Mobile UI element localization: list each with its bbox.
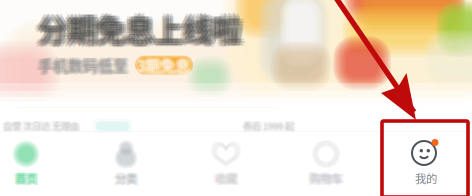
staticText: 分类 <box>117 171 139 188</box>
staticText: 券后 1999 起 <box>243 118 294 131</box>
staticText: 券后 1999 起 <box>242 119 293 132</box>
staticText: 购物车 <box>309 170 342 186</box>
staticText: 券后 1999 起 <box>242 120 293 133</box>
staticText: 3期免息 <box>137 56 190 77</box>
staticText: 分类 <box>116 169 138 186</box>
staticText: 收藏 <box>217 169 239 185</box>
staticText: 购物车 <box>309 169 342 185</box>
staticText: 自营 次日达 无理由 <box>3 120 79 134</box>
staticText: 手机数码低至 <box>41 54 131 76</box>
staticText: 3期免息 <box>137 54 190 76</box>
staticText: 分期免息上线啦 <box>40 5 243 48</box>
staticText: 自营 次日达 无理由 <box>4 118 80 132</box>
staticText: 购物车 <box>309 169 342 186</box>
staticText: 券后 1999 起 <box>241 118 292 131</box>
staticText: 券后 1999 起 <box>244 119 295 132</box>
staticText: 自营 次日达 无理由 <box>2 120 78 133</box>
staticText: 购物车 <box>311 170 344 186</box>
staticText: 3期免息 <box>138 54 191 75</box>
staticText: 自营 次日达 无理由 <box>4 120 80 134</box>
staticText: 手机数码低至 <box>36 56 126 77</box>
staticText: 手机数码低至 <box>38 53 128 74</box>
staticText: 首页 <box>15 171 37 187</box>
staticText: 收藏 <box>216 170 238 186</box>
button[interactable]: 分类 <box>76 128 176 196</box>
staticText: 购物车 <box>309 168 342 185</box>
staticText: 收藏 <box>217 170 239 186</box>
staticText: 分期免息上线啦 <box>40 8 243 51</box>
staticText: 分期免息上线啦 <box>43 7 246 49</box>
staticText: 分类 <box>116 171 138 187</box>
staticText: 分类 <box>114 170 136 186</box>
staticText: 购物车 <box>309 171 342 187</box>
staticText: 分期免息上线啦 <box>38 4 241 46</box>
staticText: 分期免息上线啦 <box>34 4 237 47</box>
staticText: 首页 <box>13 170 35 186</box>
staticText: 3期免息 <box>135 53 188 74</box>
staticText: 分期免息上线啦 <box>41 7 244 49</box>
staticText: 手机数码低至 <box>40 56 130 77</box>
staticText: 分期免息上线啦 <box>36 8 239 51</box>
staticText: 券后 1999 起 <box>245 119 296 132</box>
staticText: 券后 1999 起 <box>242 118 293 132</box>
staticText: 手机数码低至 <box>38 56 128 77</box>
staticText: 自营 次日达 无理由 <box>2 118 78 132</box>
staticText: 自营 次日达 无理由 <box>3 120 79 133</box>
staticText: 收藏 <box>214 171 236 187</box>
staticText: 券后 1999 起 <box>244 120 295 134</box>
staticText: 分期免息上线啦 <box>38 10 241 53</box>
staticText: 分类 <box>115 171 137 188</box>
staticText: 首页 <box>13 171 35 188</box>
staticText: 首页 <box>17 169 39 185</box>
staticText: 购物车 <box>307 170 340 186</box>
staticText: 3期免息 <box>137 53 190 75</box>
staticText: 购物车 <box>309 171 342 187</box>
staticText: 首页 <box>17 170 39 186</box>
button[interactable]: 我的 <box>376 128 472 196</box>
button[interactable]: 收藏 <box>176 128 276 196</box>
staticText: 收藏 <box>217 171 239 188</box>
staticText: 首页 <box>14 170 36 186</box>
staticText: 收藏 <box>215 171 237 188</box>
staticText: 分期免息上线啦 <box>38 5 241 47</box>
staticText: 分期免息上线啦 <box>42 9 245 52</box>
staticText: 分期免息上线啦 <box>36 5 239 48</box>
staticText: 首页 <box>17 171 39 188</box>
staticText: 购物车 <box>308 171 341 188</box>
staticText: 购物车 <box>310 171 343 187</box>
staticText: 自营 次日达 无理由 <box>5 119 81 132</box>
staticText: 3期免息 <box>135 54 188 76</box>
staticText: 3期免息 <box>140 54 193 76</box>
staticText: 首页 <box>16 170 38 186</box>
staticText: 分类 <box>114 171 136 187</box>
button[interactable]: 购物车 <box>276 128 376 196</box>
staticText: 3期免息 <box>138 55 191 76</box>
staticText: 收藏 <box>215 170 237 186</box>
staticText: 首页 <box>14 171 36 187</box>
staticText: 分类 <box>117 170 139 186</box>
staticText: 自营 次日达 无理由 <box>1 120 77 134</box>
staticText: 我的 <box>415 170 437 186</box>
staticText: 3期免息 <box>136 54 189 75</box>
staticText: 手机数码低至 <box>35 54 125 76</box>
staticText: 3期免息 <box>137 53 190 74</box>
button[interactable]: 首页 <box>0 128 76 196</box>
staticText: 分期免息上线啦 <box>34 9 237 52</box>
staticText: 分类 <box>113 171 135 188</box>
staticText: 收藏 <box>215 169 237 185</box>
staticText: 自营 次日达 无理由 <box>3 119 79 132</box>
staticText: 首页 <box>14 169 36 186</box>
staticText: 手机数码低至 <box>38 53 128 74</box>
staticText: 首页 <box>15 169 37 185</box>
staticText: 首页 <box>16 169 38 186</box>
staticText: 手机数码低至 <box>40 53 130 74</box>
staticText: 自营 次日达 无理由 <box>4 119 80 132</box>
staticText: 手机数码低至 <box>36 53 126 74</box>
staticText: 券后 1999 起 <box>244 118 295 131</box>
staticText: 首页 <box>15 171 37 188</box>
staticText: 自营 次日达 无理由 <box>1 119 77 132</box>
staticText: 分期免息上线啦 <box>38 7 241 49</box>
staticText: 分类 <box>116 170 138 186</box>
staticText: 分期免息上线啦 <box>38 9 241 52</box>
staticText: 自营 次日达 无理由 <box>4 120 80 133</box>
